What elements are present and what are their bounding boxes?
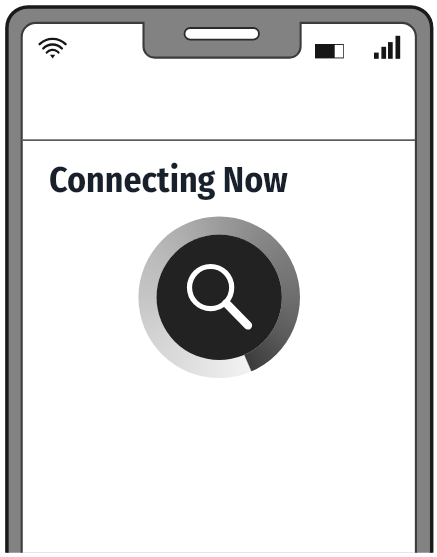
button[interactable]: Connecting Now bbox=[49, 159, 288, 202]
staticText: Connecting Now bbox=[49, 159, 288, 202]
button[interactable]: Search bbox=[138, 216, 301, 379]
